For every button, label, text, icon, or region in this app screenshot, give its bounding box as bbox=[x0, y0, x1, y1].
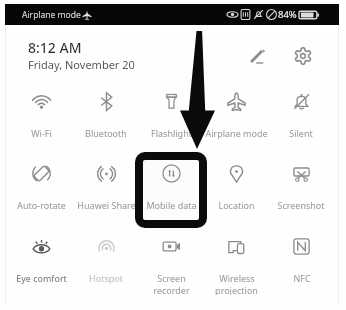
button[interactable]: Huawei Share bbox=[74, 164, 138, 222]
staticText: Huawei Share bbox=[77, 199, 136, 211]
button[interactable]: Bluetooth bbox=[74, 92, 138, 150]
button[interactable]: Silent bbox=[269, 92, 333, 150]
staticText: Screen bbox=[157, 272, 186, 284]
staticText: Mobile data bbox=[146, 199, 197, 211]
button[interactable]: Wireless bbox=[204, 237, 268, 295]
staticText: Airplane mode bbox=[205, 127, 268, 139]
button[interactable]: Wi-Fi bbox=[9, 92, 73, 150]
staticText: Auto-rotate bbox=[17, 199, 66, 211]
button[interactable]: Settings bbox=[292, 45, 314, 67]
staticText: Location bbox=[218, 199, 255, 211]
staticText: NFC bbox=[293, 272, 311, 284]
staticText: Friday, November 20 bbox=[28, 57, 135, 72]
button[interactable]: Screen bbox=[139, 237, 203, 295]
button[interactable]: Screenshot bbox=[269, 164, 333, 222]
button[interactable]: Mobile data bbox=[139, 164, 203, 222]
button[interactable]: Auto-rotate bbox=[9, 164, 73, 222]
button[interactable]: NFC bbox=[269, 237, 333, 295]
staticText: projection bbox=[215, 284, 258, 295]
button[interactable]: Flashlight bbox=[139, 92, 203, 150]
staticText: Silent bbox=[289, 127, 313, 139]
button[interactable]: Hotspot bbox=[74, 237, 138, 295]
button[interactable]: Edit bbox=[246, 45, 268, 67]
staticText: 84% bbox=[278, 8, 297, 21]
staticText: Eye comfort bbox=[16, 272, 67, 284]
staticText: Bluetooth bbox=[85, 127, 127, 139]
staticText: Screenshot bbox=[277, 199, 325, 211]
button[interactable] bbox=[143, 160, 199, 220]
button[interactable]: Airplane mode bbox=[204, 92, 268, 150]
staticText: Mobile data bbox=[146, 199, 197, 211]
staticText: Flashlight bbox=[151, 127, 192, 139]
staticText: Wi-Fi bbox=[31, 127, 52, 139]
staticText: Hotspot bbox=[89, 272, 123, 284]
staticText: recorder bbox=[153, 284, 190, 295]
staticText: 8:12 AM bbox=[28, 38, 82, 57]
button[interactable]: Location bbox=[204, 164, 268, 222]
button[interactable]: Eye comfort bbox=[9, 237, 73, 295]
staticText: Wireless bbox=[219, 272, 255, 284]
staticText: Airplane mode bbox=[22, 9, 81, 21]
